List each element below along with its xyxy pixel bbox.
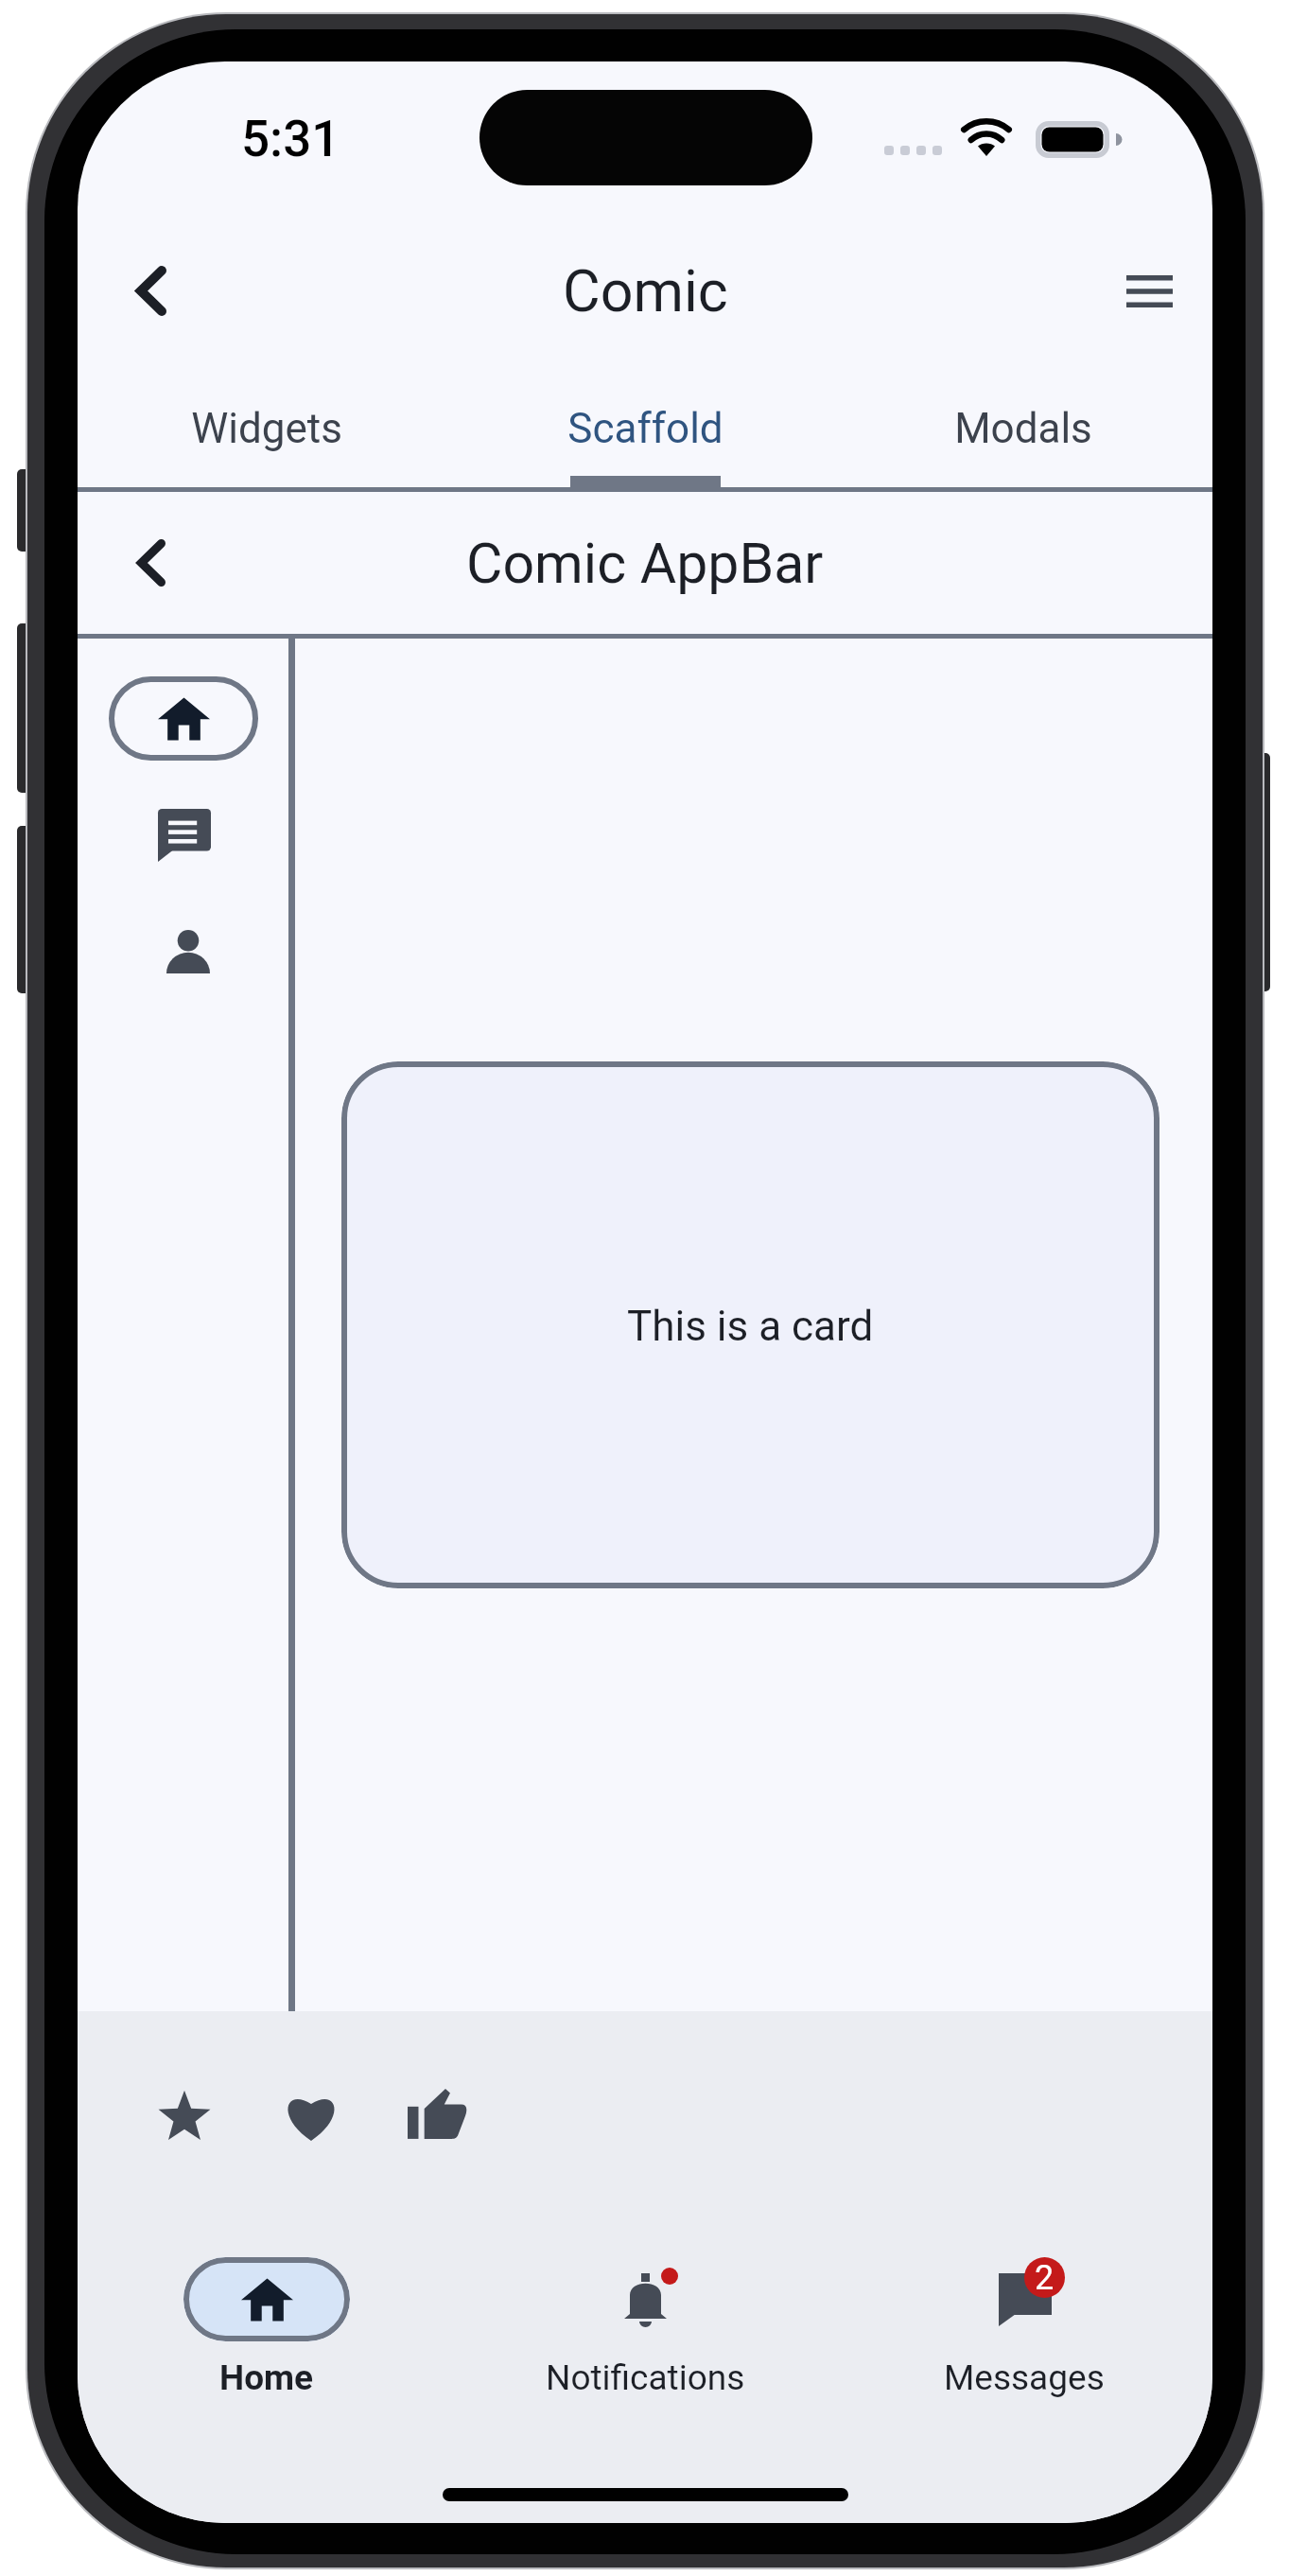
staticText: 5:31 [241,110,340,168]
button[interactable]: Back [98,237,204,343]
staticText: 2 [1035,2258,1055,2298]
button[interactable]: Favorite [140,2070,229,2160]
button[interactable]: Messages [941,2257,1107,2341]
staticText: Modals [954,404,1092,453]
staticText: Home [219,2357,314,2398]
button[interactable]: Home [109,676,258,761]
staticText: Comic AppBar [466,531,824,596]
button[interactable]: Thumb up [389,2068,485,2160]
button[interactable]: Modals [834,378,1212,487]
button[interactable]: Back [98,510,204,616]
staticText: Scaffold [567,404,723,453]
staticText: Messages [944,2357,1105,2398]
staticText: Comic [563,257,728,324]
staticText: Widgets [191,404,342,453]
button[interactable]: This is a card [341,1061,1159,1588]
button[interactable]: Messages [139,790,230,881]
button[interactable]: Scaffold [456,378,834,487]
button[interactable]: Like [266,2072,357,2161]
staticText: This is a card [627,1302,874,1351]
button[interactable]: Notifications [562,2257,728,2341]
button[interactable] [183,2257,350,2341]
button[interactable]: Widgets [78,378,456,487]
button[interactable]: Menu [1073,237,1179,343]
button[interactable]: Profile [143,906,234,997]
staticText: Notifications [546,2357,745,2398]
